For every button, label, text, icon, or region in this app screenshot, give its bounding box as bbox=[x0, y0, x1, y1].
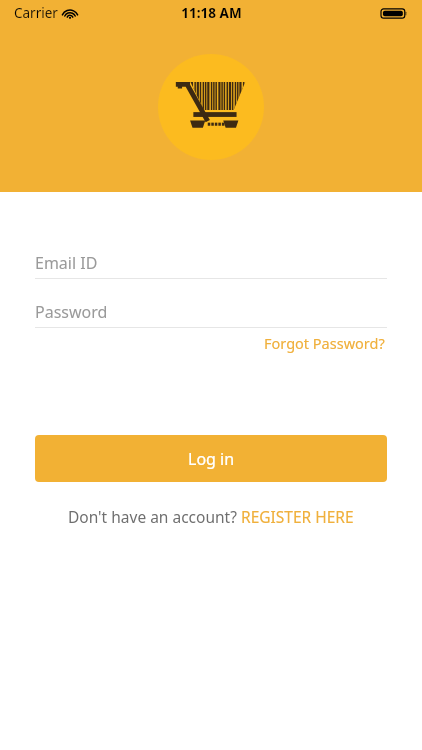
button[interactable]: Forgot Password? bbox=[262, 328, 387, 358]
staticText: REGISTER HERE bbox=[241, 506, 354, 527]
staticText: Email ID bbox=[35, 252, 98, 274]
staticText: 11:18 AM bbox=[181, 4, 242, 22]
staticText: Log in bbox=[188, 448, 235, 470]
staticText: Forgot Password? bbox=[264, 333, 385, 353]
button[interactable]: Email ID bbox=[35, 248, 387, 279]
other: Cuemo logo bbox=[175, 75, 247, 139]
staticText: Carrier bbox=[14, 4, 58, 22]
button[interactable]: REGISTER HERE bbox=[241, 502, 354, 531]
button[interactable]: Log in bbox=[35, 435, 387, 482]
staticText: Password bbox=[35, 301, 108, 323]
staticText: Don't have an account? bbox=[68, 506, 241, 527]
button[interactable]: Password bbox=[35, 297, 387, 328]
